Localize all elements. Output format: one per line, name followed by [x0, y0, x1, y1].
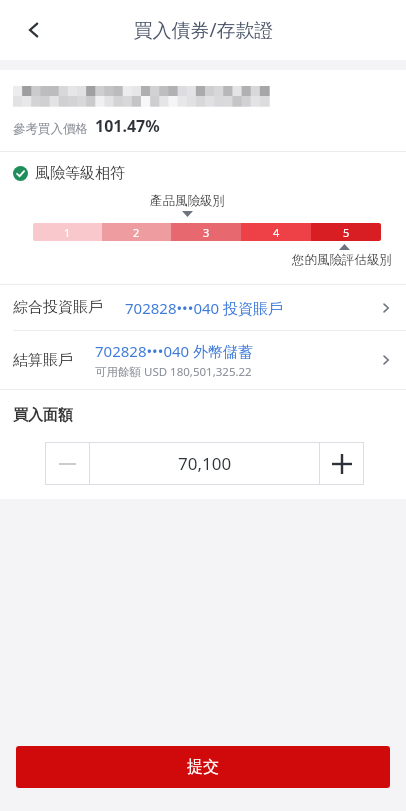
button[interactable]: Increase	[320, 442, 364, 485]
staticText: 買入面額	[13, 406, 73, 425]
staticText: 綜合投資賬戶	[13, 298, 103, 317]
staticText: 4	[273, 225, 280, 240]
staticText: 70,100	[178, 452, 232, 475]
staticText: 您的風險評估級別	[292, 252, 392, 268]
staticText: 可用餘額 USD 180,501,325.22	[95, 364, 252, 380]
staticText: 提交	[187, 757, 219, 777]
staticText: 101.47%	[95, 115, 160, 137]
staticText: 風險等級相符	[35, 164, 125, 183]
button[interactable]: 綜合投資賬戶	[0, 285, 406, 330]
staticText: 3	[203, 225, 210, 240]
button[interactable]: Back	[12, 8, 56, 52]
button[interactable]: Decrease	[45, 442, 89, 485]
staticText: 結算賬戶	[13, 351, 73, 370]
button[interactable]: 提交	[16, 746, 390, 788]
staticText: 1	[64, 225, 71, 240]
button[interactable]: 結算賬戶	[0, 331, 406, 389]
staticText: 買入債券/存款證	[133, 17, 274, 43]
staticText: 5	[343, 225, 350, 240]
staticText: 產品風險級別	[150, 193, 225, 209]
staticText: 702828•••040 外幣儲蓄	[95, 341, 254, 361]
staticText: 702828•••040 投資賬戶	[125, 298, 284, 318]
staticText: 2	[133, 225, 140, 240]
staticText: 參考買入價格	[13, 121, 88, 137]
